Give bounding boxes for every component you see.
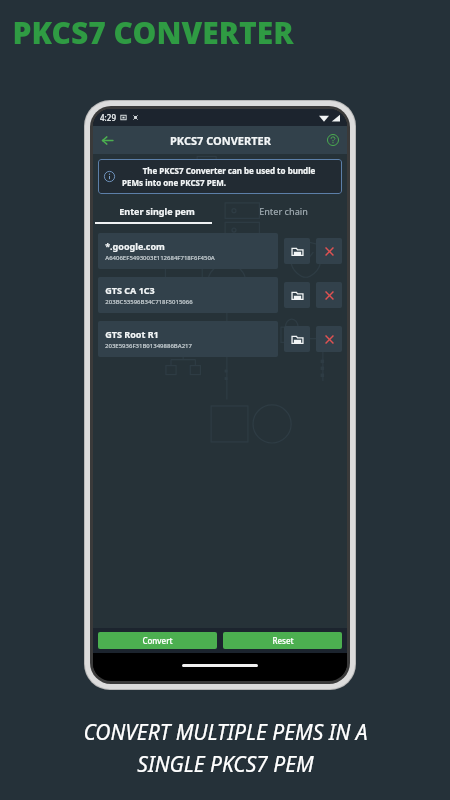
staticText: The PKCS7 Converter can be used to bundl…: [122, 165, 336, 176]
staticText: GTS Root R1: [105, 328, 159, 340]
button[interactable]: Enter chain: [220, 203, 347, 218]
button[interactable]: Remove: [316, 282, 342, 308]
button[interactable]: GTS Root R1: [98, 321, 278, 357]
button[interactable]: The PKCS7 Converter can be used to bundl…: [98, 159, 342, 194]
button[interactable]: Remove: [316, 238, 342, 264]
staticText: Convert: [142, 635, 173, 646]
button[interactable]: Back: [93, 126, 121, 154]
staticText: 203BC53596B34C718F5015066: [105, 298, 193, 306]
staticText: Enter chain: [259, 205, 308, 217]
staticText: 4:29: [100, 112, 116, 123]
button[interactable]: Browse file: [284, 238, 310, 264]
button[interactable]: Convert: [98, 632, 217, 649]
button[interactable]: Browse file: [284, 326, 310, 352]
staticText: A6406EF5493003E112684F718F6F450A: [105, 254, 215, 262]
button[interactable]: Enter single pem: [93, 203, 220, 218]
staticText: SINGLE PKCS7 PEM: [137, 750, 314, 779]
staticText: GTS CA 1C3: [105, 284, 155, 296]
button[interactable]: Browse file: [284, 282, 310, 308]
staticText: PKCS7 CONVERTER: [12, 12, 294, 53]
staticText: Enter single pem: [119, 205, 195, 217]
button[interactable]: Reset: [223, 632, 342, 649]
button[interactable]: Help: [319, 126, 347, 154]
staticText: PKCS7 CONVERTER: [170, 133, 271, 148]
button[interactable]: *.google.com: [98, 233, 278, 269]
staticText: Reset: [272, 635, 294, 646]
staticText: 203E5936F31B01349886BA217: [105, 342, 192, 350]
button[interactable]: GTS CA 1C3: [98, 277, 278, 313]
staticText: *.google.com: [105, 240, 165, 252]
button[interactable]: Remove: [316, 326, 342, 352]
staticText: CONVERT MULTIPLE PEMS IN A: [83, 718, 368, 747]
staticText: PEMs into one PKCS7 PEM.: [122, 177, 226, 188]
